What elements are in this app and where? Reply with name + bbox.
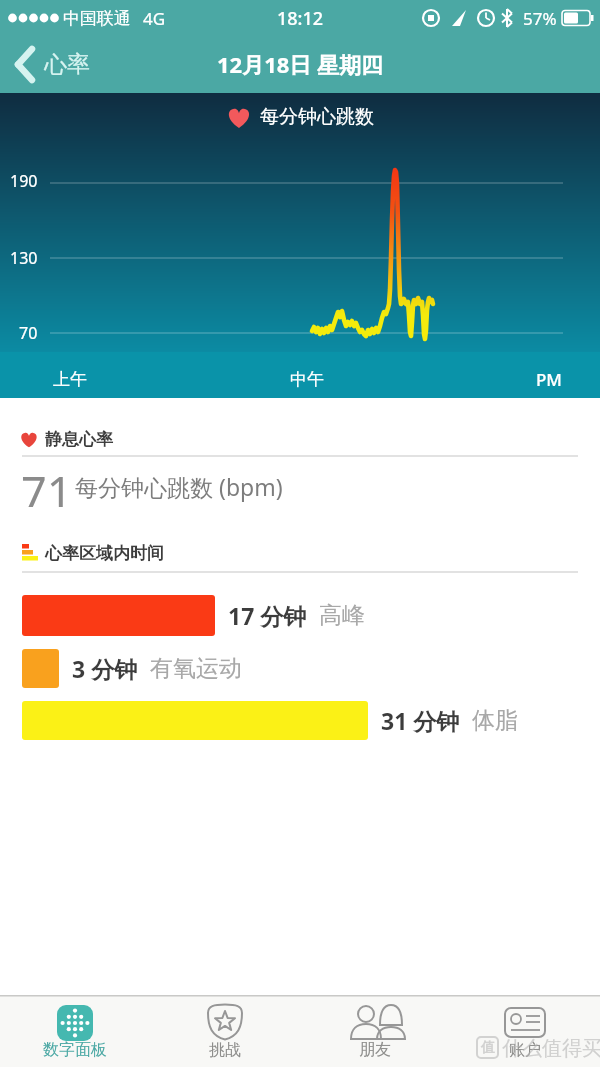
button[interactable]: 账户 <box>450 995 600 1067</box>
button[interactable]: 挑战 <box>150 995 300 1067</box>
staticText: 每分钟心跳数 (bpm) <box>75 471 283 502</box>
staticText: 70 <box>19 322 38 344</box>
staticText: 18:12 <box>277 6 324 31</box>
staticText: 心率区域内时间 <box>45 543 164 564</box>
staticText: 4G <box>143 7 166 30</box>
staticText: 17 分钟 <box>228 600 307 631</box>
staticText: 账户 <box>509 1040 541 1060</box>
staticText: 130 <box>10 247 38 269</box>
staticText: 3 分钟 <box>72 653 138 684</box>
button[interactable]: 数字面板 <box>0 995 150 1067</box>
staticText: 挑战 <box>209 1040 241 1060</box>
staticText: 中午 <box>290 369 324 390</box>
staticText: 心率 <box>44 50 90 79</box>
button[interactable] <box>22 649 59 688</box>
staticText: 高峰 <box>319 601 365 630</box>
staticText: 190 <box>10 170 38 192</box>
staticText: 12月18日 星期四 <box>217 49 384 79</box>
staticText: 值 <box>481 1039 495 1057</box>
staticText: 有氧运动 <box>150 654 242 683</box>
staticText: 数字面板 <box>43 1040 107 1060</box>
staticText: 71 <box>21 462 73 507</box>
staticText: 朋友 <box>359 1040 391 1060</box>
staticText: 57% <box>523 7 557 30</box>
staticText: 静息心率 <box>45 429 113 450</box>
staticText: PM <box>536 368 562 391</box>
button[interactable] <box>6 40 116 88</box>
staticText: 什么值得买 <box>502 1036 600 1061</box>
staticText: 体脂 <box>472 706 518 735</box>
button[interactable]: 朋友 <box>300 995 450 1067</box>
staticText: 31 分钟 <box>381 705 460 736</box>
staticText: 中国联通 <box>63 8 131 29</box>
staticText: 上午 <box>53 369 87 390</box>
staticText: 每分钟心跳数 <box>260 105 374 129</box>
button[interactable] <box>22 595 215 636</box>
button[interactable] <box>22 701 368 740</box>
